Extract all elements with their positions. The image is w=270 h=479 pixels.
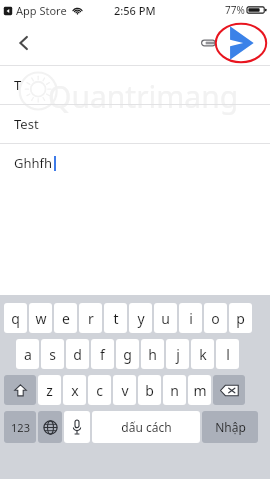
button[interactable]: p [229,303,252,333]
button[interactable]: o [204,303,227,333]
staticText: r [88,309,94,328]
staticText: b [145,381,154,400]
staticText: k [199,345,207,364]
staticText: Ghhfh [14,154,53,172]
button[interactable]: s [41,339,64,369]
staticText: g [123,345,132,364]
staticText: T [14,76,22,94]
button[interactable]: Voice input [64,411,90,443]
button[interactable]: Backspace [213,375,245,405]
staticText: y [137,309,145,328]
staticText: w [35,309,47,328]
button[interactable]: n [163,375,186,405]
staticText: 123 [11,420,30,435]
staticText: e [62,309,70,328]
button[interactable]: 123 [4,411,36,443]
button[interactable]: Send [215,22,267,64]
button[interactable]: x [63,375,86,405]
button[interactable]: c [88,375,111,405]
button[interactable]: f [91,339,114,369]
button[interactable]: j [166,339,189,369]
button[interactable]: v [113,375,136,405]
staticText: x [71,381,79,400]
staticText: Test [14,115,39,133]
staticText: m [193,381,207,400]
button[interactable]: g [116,339,139,369]
staticText: Quantrimang [48,76,239,117]
staticText: Nhập [215,419,246,435]
staticText: u [161,309,170,328]
staticText: p [236,309,245,328]
button[interactable]: Back [8,27,40,59]
staticText: d [73,345,82,364]
staticText: v [121,381,129,400]
staticText: 2:56 PM [114,3,156,18]
staticText: o [211,309,220,328]
button[interactable]: Ghhfh [0,144,270,182]
button[interactable]: l [216,339,239,369]
staticText: s [49,345,56,364]
button[interactable]: e [54,303,77,333]
button[interactable]: w [29,303,52,333]
button[interactable]: z [38,375,61,405]
button[interactable]: b [138,375,161,405]
staticText: z [46,381,53,400]
button[interactable]: d [66,339,89,369]
staticText: q [11,309,20,328]
staticText: j [176,345,180,364]
button[interactable]: Attach file [195,30,221,56]
button[interactable]: i [179,303,202,333]
button[interactable]: k [191,339,214,369]
button[interactable]: T [0,66,270,104]
button[interactable]: Shift [4,375,36,405]
staticText: c [96,381,103,400]
staticText: 77% [225,3,245,17]
button[interactable]: Nhập [202,411,258,443]
button[interactable]: q [4,303,27,333]
button[interactable]: m [188,375,211,405]
button[interactable]: u [154,303,177,333]
button[interactable]: a [16,339,39,369]
button[interactable]: y [129,303,152,333]
staticText: h [148,345,157,364]
staticText: t [113,309,119,328]
button[interactable]: Change keyboard language [38,411,62,443]
button[interactable]: h [141,339,164,369]
button[interactable]: dấu cách [92,411,200,443]
button[interactable]: Test [0,105,270,143]
button[interactable]: t [104,303,127,333]
staticText: dấu cách [121,419,172,435]
staticText: l [226,345,230,364]
staticText: i [189,309,193,328]
staticText: f [100,345,105,364]
staticText: n [170,381,179,400]
staticText: App Store [16,3,67,18]
staticText: a [24,345,32,364]
button[interactable]: r [79,303,102,333]
